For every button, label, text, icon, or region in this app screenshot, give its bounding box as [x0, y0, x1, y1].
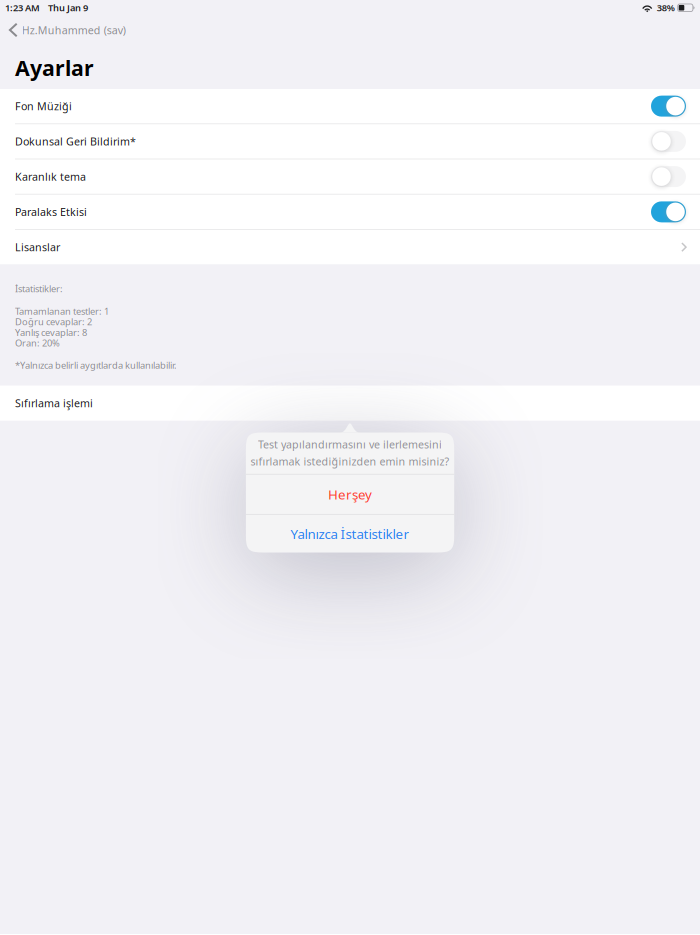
button[interactable]: Paralaks Etkisi: [0, 195, 700, 229]
staticText: Oran: 20%: [15, 337, 60, 349]
button[interactable]: Herşey: [246, 475, 454, 514]
staticText: Yalnızca İstatistikler: [291, 525, 410, 543]
staticText: Dokunsal Geri Bildirim*: [15, 134, 136, 148]
button[interactable]: Karanlık tema: [0, 159, 700, 194]
staticText: 38%: [657, 2, 675, 14]
staticText: Lisanslar: [15, 240, 60, 254]
button[interactable]: Lisanslar: [0, 230, 700, 264]
staticText: Herşey: [328, 485, 372, 503]
button[interactable]: Yalnızca İstatistikler: [246, 515, 454, 553]
staticText: Hz.Muhammed (sav): [22, 23, 126, 37]
button[interactable]: Hz.Muhammed (sav): [0, 15, 126, 44]
button[interactable]: Sıfırlama işlemi: [0, 386, 700, 421]
staticText: İstatistikler:: [15, 282, 63, 295]
staticText: Thu Jan 9: [48, 2, 88, 14]
staticText: sıfırlamak istediğinizden emin misiniz?: [251, 454, 450, 469]
staticText: *Yalnızca belirli aygıtlarda kullanılabi…: [15, 359, 177, 371]
button[interactable]: Fon Müziği: [0, 89, 700, 123]
staticText: Yanlış cevaplar: 8: [15, 326, 87, 339]
staticText: Ayarlar: [15, 53, 94, 82]
staticText: Test yapılandırmasını ve ilerlemesini: [258, 437, 442, 451]
button[interactable]: Dokunsal Geri Bildirim*: [0, 124, 700, 158]
staticText: Karanlık tema: [15, 169, 86, 184]
staticText: Paralaks Etkisi: [15, 205, 87, 219]
staticText: Tamamlanan testler: 1: [15, 305, 109, 317]
staticText: Sıfırlama işlemi: [15, 396, 93, 410]
staticText: 1:23 AM: [5, 2, 40, 14]
staticText: Doğru cevaplar: 2: [15, 316, 92, 328]
staticText: Fon Müziği: [15, 99, 72, 113]
